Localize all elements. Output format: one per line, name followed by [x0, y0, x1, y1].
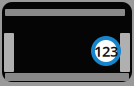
staticText: 123 [94, 41, 118, 61]
